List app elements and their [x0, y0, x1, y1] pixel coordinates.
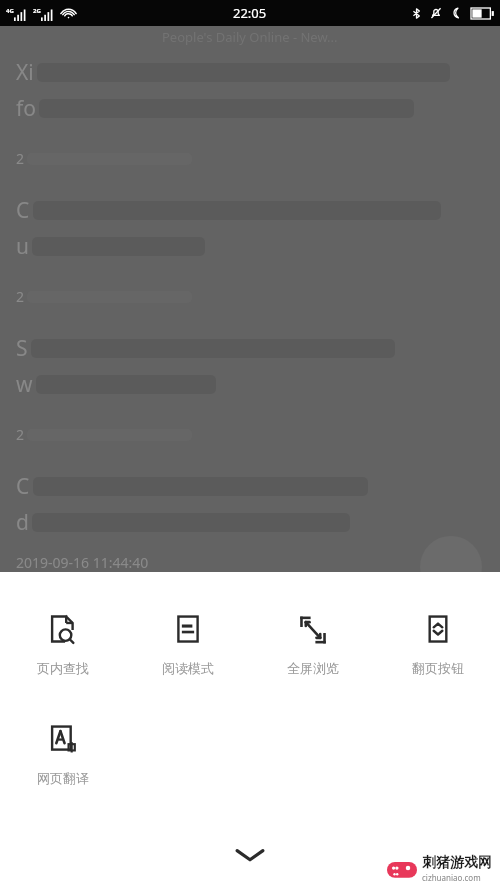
staticText: w — [16, 370, 33, 399]
staticText: d — [16, 508, 29, 537]
staticText: fo — [16, 94, 36, 123]
staticText: 阅读模式 — [162, 660, 214, 676]
staticText: C — [16, 196, 30, 225]
staticText: 刺猪游戏网 — [422, 854, 492, 872]
staticText: 2G — [33, 7, 41, 15]
staticText: 全屏浏览 — [287, 660, 339, 676]
staticText: cizhuaniao.com — [422, 872, 481, 883]
button[interactable]: 全屏浏览 — [250, 608, 375, 682]
button[interactable]: 阅读模式 — [125, 608, 250, 682]
staticText: 页内查找 — [37, 660, 89, 676]
staticText: 2 — [16, 287, 25, 306]
button[interactable]: Collapse — [0, 829, 500, 881]
staticText: u — [16, 232, 29, 261]
staticText: People's Daily Online - New... — [162, 28, 338, 46]
staticText: 22:05 — [233, 4, 267, 22]
staticText: C — [16, 472, 30, 501]
staticText: 4G — [6, 7, 14, 15]
staticText: 2 — [16, 149, 25, 168]
staticText: 翻页按钮 — [412, 660, 464, 676]
staticText: 2019-09-16 11:44:40 — [16, 553, 149, 572]
button[interactable]: 翻页按钮 — [375, 608, 500, 682]
staticText: Xi — [16, 58, 34, 87]
staticText: S — [16, 334, 28, 363]
button[interactable]: 页内查找 — [0, 608, 125, 682]
staticText: 网页翻译 — [37, 770, 89, 786]
button[interactable]: 网页翻译 — [0, 718, 125, 792]
staticText: 2 — [16, 425, 25, 444]
